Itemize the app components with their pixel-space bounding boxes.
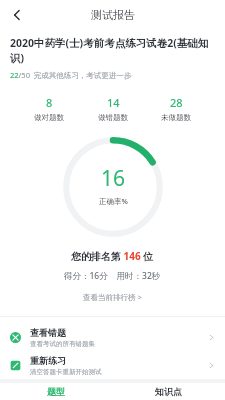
staticText: 查看当前排行榜 >	[83, 292, 142, 302]
staticText: 2020中药学(士)考前考点练习试卷2(基础知识)	[10, 36, 215, 65]
staticText: 题型	[47, 386, 65, 397]
staticText: 重新练习	[30, 355, 66, 366]
button[interactable]: 28	[155, 94, 197, 123]
staticText: 22/50 完成其他练习，考试更进一步	[10, 70, 132, 80]
staticText: 16	[101, 164, 126, 193]
staticText: 清空答题卡重新开始测试	[30, 368, 102, 376]
staticText: 14	[107, 95, 120, 110]
staticText: 得分：16分 用时：32秒	[64, 270, 161, 282]
button[interactable]: 14	[92, 94, 134, 123]
button[interactable]: 8	[28, 94, 70, 123]
staticText: 做对题数	[34, 113, 64, 122]
staticText: 28	[170, 95, 183, 110]
button[interactable]: 查看错题	[0, 323, 225, 351]
staticText: 查看错题	[30, 327, 66, 338]
staticText: 正确率%	[99, 196, 128, 206]
button[interactable]: 题型	[0, 383, 112, 400]
staticText: 您的排名第 146 位	[71, 249, 154, 263]
staticText: 未做题数	[161, 113, 191, 122]
staticText: 测试报告	[91, 8, 135, 22]
button[interactable]: 重新练习	[0, 351, 225, 379]
staticText: 8	[46, 95, 53, 110]
button[interactable]: 查看当前排行榜 >	[75, 290, 150, 304]
button[interactable]: 知识点	[112, 383, 225, 400]
staticText: 做错题数	[98, 113, 128, 122]
staticText: 查看考试的所有错题集	[30, 340, 95, 348]
button[interactable]: Back	[0, 0, 34, 30]
staticText: 知识点	[155, 386, 182, 397]
